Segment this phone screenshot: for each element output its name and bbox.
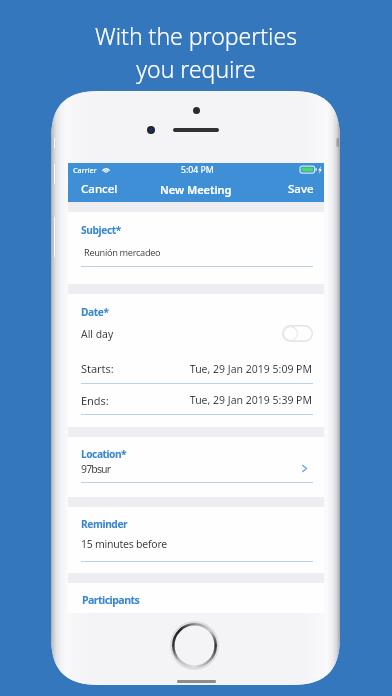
button[interactable] xyxy=(68,324,324,343)
staticText: Tue, 29 Jan 2019 5:09 PM xyxy=(189,362,312,376)
staticText: Participants xyxy=(82,593,140,607)
button[interactable]: Home xyxy=(172,623,217,668)
button[interactable] xyxy=(68,437,324,497)
staticText: you require xyxy=(0,53,392,84)
staticText: Reunión mercadeo xyxy=(84,246,161,259)
button[interactable]: Save xyxy=(276,176,324,202)
staticText: With the properties xyxy=(0,20,392,51)
staticText: 5:04 PM xyxy=(181,164,214,176)
staticText: Cancel xyxy=(81,181,118,197)
staticText: Subject* xyxy=(81,223,121,237)
staticText: Date* xyxy=(81,305,109,319)
staticText: New Meeting xyxy=(160,182,232,197)
staticText: Location* xyxy=(81,447,127,461)
staticText: 97bsur xyxy=(81,462,111,476)
button[interactable]: All day toggle xyxy=(282,325,313,342)
staticText: Save xyxy=(288,181,314,197)
staticText: Reminder xyxy=(81,517,128,531)
button[interactable] xyxy=(68,583,324,613)
staticText: Ends: xyxy=(81,393,109,408)
staticText: Tue, 29 Jan 2019 5:39 PM xyxy=(189,393,312,407)
button[interactable] xyxy=(68,507,324,573)
staticText: Carrier xyxy=(73,165,97,175)
button[interactable]: Cancel xyxy=(68,176,130,202)
button[interactable] xyxy=(68,212,324,284)
staticText: Starts: xyxy=(81,361,114,376)
staticText: 15 minutes before xyxy=(81,537,168,551)
staticText: All day xyxy=(81,327,114,341)
